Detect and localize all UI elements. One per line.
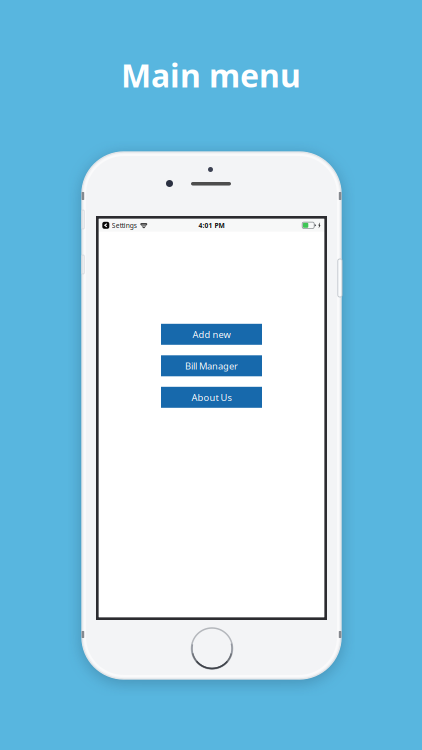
button[interactable]: About Us (161, 387, 262, 408)
staticText: Add new (192, 328, 230, 340)
staticText: About Us (191, 391, 231, 403)
staticText: Main menu (121, 54, 301, 96)
staticText: Settings (112, 221, 137, 230)
button[interactable]: Bill Manager (161, 355, 262, 376)
staticText: 4:01 PM (198, 221, 224, 230)
button[interactable]: Settings (102, 221, 137, 230)
staticText: Bill Manager (185, 360, 238, 372)
button[interactable]: Add new (161, 324, 262, 345)
